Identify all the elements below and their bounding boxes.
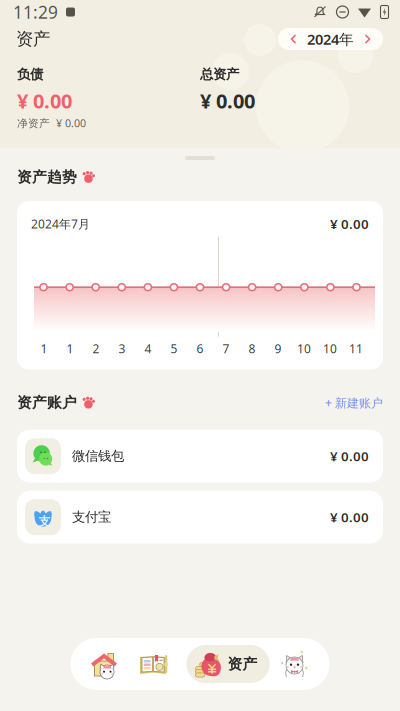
staticText: 2024年7月 [31,216,90,232]
staticText: 1 [40,341,47,357]
staticText: 10 [297,341,311,357]
staticText: 10 [323,341,337,357]
button[interactable]: 资产 [186,645,269,683]
staticText: 4 [144,341,151,357]
staticText: ¥ 0.00 [17,87,72,114]
staticText: 资产 [227,655,257,673]
staticText: 8 [248,341,255,357]
staticText: 支付宝 [72,509,111,525]
staticText: 11 [349,341,363,357]
staticText: 净资产 ¥ 0.00 [17,116,86,130]
staticText: 11:29 [13,0,58,23]
staticText: 负债 [17,66,43,82]
staticText: ¥ 0.00 [330,447,369,465]
staticText: 7 [222,341,229,357]
staticText: 支 [38,514,50,529]
button[interactable]: 微信钱包 [17,430,383,483]
staticText: 2 [92,341,99,357]
staticText: 微信钱包 [72,448,124,464]
button[interactable]: + 新建账户 [325,395,383,411]
staticText: 总资产 [200,66,239,82]
staticText: 3 [118,341,125,357]
staticText: 5 [170,341,177,357]
staticText: 1 [66,341,73,357]
staticText: ¥ 0.00 [200,87,255,114]
button[interactable]: 2024年 [278,28,383,50]
staticText: ¥ 0.00 [330,215,369,233]
staticText: 资产趋势 [17,168,77,186]
staticText: + 新建账户 [325,395,383,411]
staticText: 资产 [16,28,50,50]
staticText: 资产账户 [17,394,77,412]
button[interactable]: 首页 [76,638,132,690]
button[interactable]: 支 [17,491,383,544]
button[interactable]: 我的 [269,638,327,690]
staticText: 6 [196,341,203,357]
staticText: 2024年 [307,29,354,49]
button[interactable]: 账本 [132,638,186,690]
staticText: 9 [274,341,281,357]
staticText: ¥ 0.00 [330,508,369,526]
